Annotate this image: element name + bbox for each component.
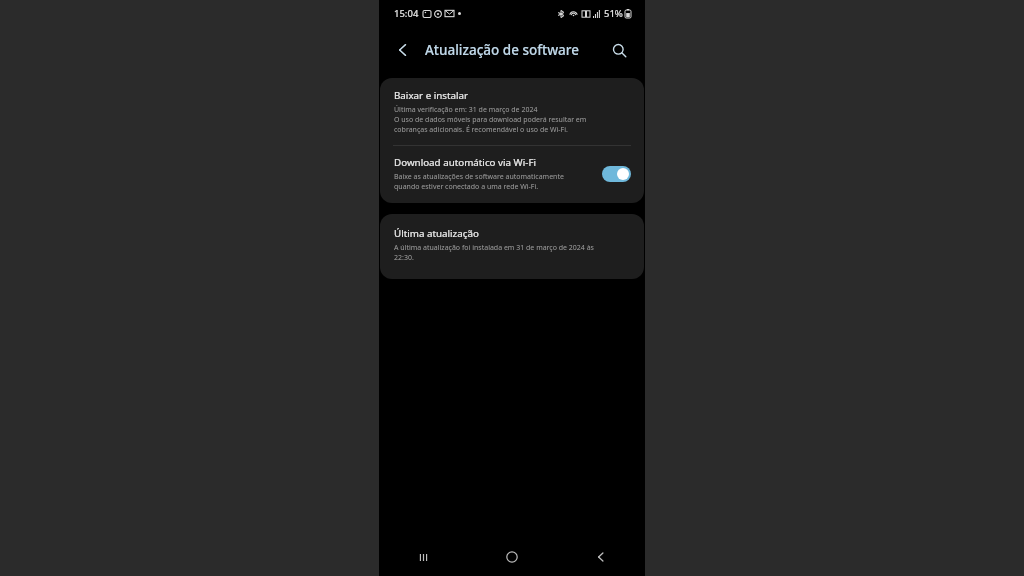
button[interactable]: Recentes	[379, 538, 467, 576]
staticText: Baixar e instalar	[394, 89, 469, 102]
staticText: O uso de dados móveis para download pode…	[394, 115, 587, 135]
staticText: Atualização de software	[425, 41, 579, 59]
staticText: 51%	[604, 7, 623, 20]
staticText: Baixe as atualizações de software automa…	[394, 172, 564, 192]
button[interactable]: Pesquisar	[603, 34, 635, 66]
staticText: Última verificação em: 31 de março de 20…	[394, 105, 538, 115]
button[interactable]: Download automático via Wi-Fi ativado	[602, 166, 631, 182]
staticText: A última atualização foi instalada em 31…	[394, 243, 594, 263]
staticText: Download automático via Wi-Fi	[394, 156, 537, 169]
staticText: 15:04	[394, 7, 419, 20]
button[interactable]: Última atualização	[380, 214, 644, 279]
button[interactable]: Voltar	[556, 538, 645, 576]
staticText: Última atualização	[394, 227, 479, 240]
button[interactable]: Baixar e instalar	[380, 78, 644, 145]
button[interactable]: Voltar	[387, 34, 419, 66]
button[interactable]: Download automático via Wi-Fi	[380, 146, 644, 203]
button[interactable]: Início	[467, 538, 556, 576]
